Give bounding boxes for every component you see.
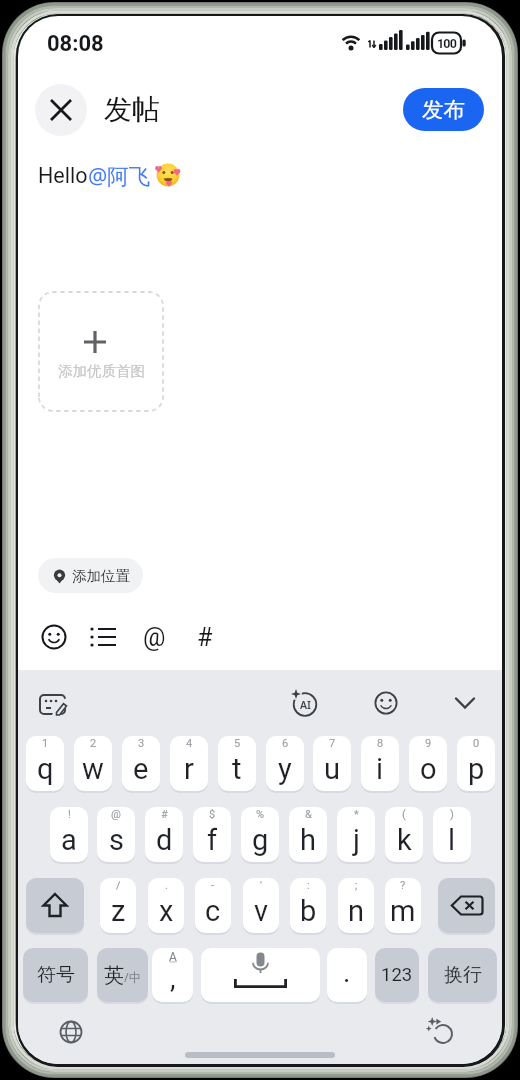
button[interactable]: # [183, 615, 227, 659]
staticText: ! [68, 808, 71, 821]
staticText: & [305, 808, 312, 821]
button[interactable] [201, 948, 320, 1002]
staticText: 2 [90, 737, 97, 750]
button[interactable]: : [290, 878, 326, 933]
button[interactable]: 2 [74, 736, 112, 791]
button[interactable] [371, 688, 401, 718]
staticText: % [256, 808, 265, 821]
staticText: 9 [425, 737, 432, 750]
button[interactable]: 1 [26, 736, 64, 791]
staticText: 5 [234, 737, 241, 750]
staticText: m [390, 894, 416, 928]
button[interactable]: 添加位置 [38, 558, 143, 593]
staticText: 0 [473, 737, 480, 750]
button[interactable]: ; [338, 878, 374, 933]
staticText: 100 [437, 36, 457, 51]
staticText: f [207, 823, 218, 857]
button[interactable]: % [241, 807, 279, 862]
button[interactable]: 英/中 [97, 948, 148, 1002]
button[interactable] [426, 1016, 456, 1046]
button[interactable]: 123 [375, 948, 419, 1002]
button[interactable]: ? [385, 878, 421, 933]
button[interactable]: . [327, 948, 367, 1002]
button[interactable]: / [100, 878, 136, 933]
staticText: 添加优质首图 [58, 362, 145, 380]
staticText: 08:08 [47, 31, 104, 57]
staticText: # [161, 808, 168, 821]
button[interactable]: 4 [170, 736, 208, 791]
staticText: 123 [381, 964, 413, 986]
button[interactable] [452, 690, 478, 716]
staticText: : [307, 879, 310, 892]
staticText: x [159, 894, 174, 928]
button[interactable]: - [195, 878, 231, 933]
button[interactable] [36, 686, 72, 722]
button[interactable]: 7 [313, 736, 351, 791]
button[interactable] [57, 1018, 85, 1046]
staticText: e [133, 752, 149, 786]
staticText: A [169, 950, 177, 964]
button[interactable]: AI [289, 688, 319, 718]
button[interactable]: 5 [218, 736, 256, 791]
staticText: . [343, 956, 351, 989]
staticText: 发布 [422, 96, 465, 123]
staticText: ; [355, 879, 358, 892]
button[interactable] [35, 84, 87, 136]
staticText: q [37, 752, 54, 786]
button[interactable]: ! [50, 807, 88, 862]
button[interactable]: 6 [266, 736, 304, 791]
staticText: @ [111, 808, 121, 821]
staticText: w [82, 752, 104, 786]
button[interactable]: $ [193, 807, 231, 862]
button[interactable]: 发布 [403, 88, 484, 131]
button[interactable] [438, 878, 495, 933]
button[interactable] [26, 878, 84, 933]
button[interactable]: ( [385, 807, 423, 862]
button[interactable]: ) [433, 807, 471, 862]
staticText: ? [400, 879, 406, 892]
staticText: # [197, 623, 213, 652]
button[interactable]: ' [243, 878, 279, 933]
staticText: v [254, 894, 269, 928]
staticText: n [348, 894, 365, 928]
button[interactable] [81, 615, 125, 659]
staticText: u [324, 752, 340, 786]
staticText: 3 [138, 737, 145, 750]
button[interactable]: & [289, 807, 327, 862]
staticText: @阿飞 [88, 161, 151, 190]
staticText: p [468, 752, 485, 786]
staticText: k [397, 823, 412, 857]
staticText: o [420, 752, 437, 786]
button[interactable]: 0 [457, 736, 495, 791]
button[interactable]: A [152, 948, 193, 1002]
staticText: i [376, 752, 384, 786]
staticText: ' [260, 879, 262, 892]
staticText: h [300, 823, 316, 857]
staticText: , [170, 962, 176, 995]
button[interactable]: . [148, 878, 184, 933]
button[interactable]: 9 [409, 736, 447, 791]
button[interactable]: 添加优质首图 [39, 292, 163, 411]
staticText: 换行 [444, 963, 482, 987]
staticText: t [232, 752, 242, 786]
button[interactable]: @ [97, 807, 135, 862]
button[interactable]: 3 [122, 736, 160, 791]
staticText: j [353, 823, 360, 857]
button[interactable]: @ [132, 615, 176, 659]
staticText: 添加位置 [72, 567, 130, 585]
staticText: AI [300, 698, 311, 712]
staticText: r [184, 752, 194, 786]
staticText: 8 [377, 737, 384, 750]
staticText: 英/中 [104, 963, 142, 988]
button[interactable]: # [145, 807, 183, 862]
button[interactable]: * [337, 807, 375, 862]
staticText: d [156, 823, 173, 857]
button[interactable]: 8 [361, 736, 399, 791]
button[interactable]: 符号 [23, 948, 88, 1002]
staticText: $ [209, 808, 216, 821]
staticText: c [205, 894, 221, 928]
button[interactable] [32, 615, 76, 659]
button[interactable]: 换行 [428, 948, 497, 1002]
staticText: 7 [329, 737, 336, 750]
staticText: ) [450, 808, 454, 821]
